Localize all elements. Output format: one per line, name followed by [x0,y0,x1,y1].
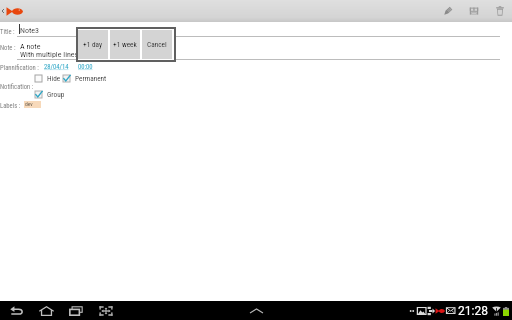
staticText: Title : [0,28,15,36]
button[interactable]: Cancel [142,30,172,59]
button[interactable]: +1 day [78,30,108,59]
button[interactable]: Group [35,90,65,99]
button[interactable]: dev [24,101,41,108]
button[interactable]: Labels [435,0,461,22]
button[interactable]: Home [31,301,61,320]
staticText: Labels : [0,102,21,110]
button[interactable]: Hide keyboard [243,301,269,320]
button[interactable]: Screenshot [91,301,121,320]
button[interactable]: 28/04/14 [44,63,69,71]
button[interactable]: 00:00 [78,63,93,71]
staticText: dev [25,101,33,108]
staticText: Hide [47,74,61,83]
staticText: Group [47,90,65,99]
button[interactable]: Save [461,0,487,22]
staticText: Permanent [75,74,107,83]
staticText: Cancel [147,40,167,49]
button[interactable]: Back [1,301,31,320]
staticText: 21:28 [458,304,488,318]
button[interactable]: Delete [487,0,512,22]
button[interactable]: Navigate up [0,0,34,22]
button[interactable]: Permanent [63,74,107,83]
staticText: +1 week [113,40,137,49]
staticText: Note : [0,44,16,52]
button[interactable]: Recent apps [61,301,91,320]
button[interactable]: +1 week [110,30,140,59]
staticText: +1 day [83,40,103,49]
staticText: A note [20,42,41,51]
staticText: Notification : [0,83,34,91]
staticText: Note3 [20,26,40,35]
staticText: With multiple lines [20,50,79,59]
button[interactable]: Hide [35,74,61,83]
staticText: Plannification : [0,64,39,72]
